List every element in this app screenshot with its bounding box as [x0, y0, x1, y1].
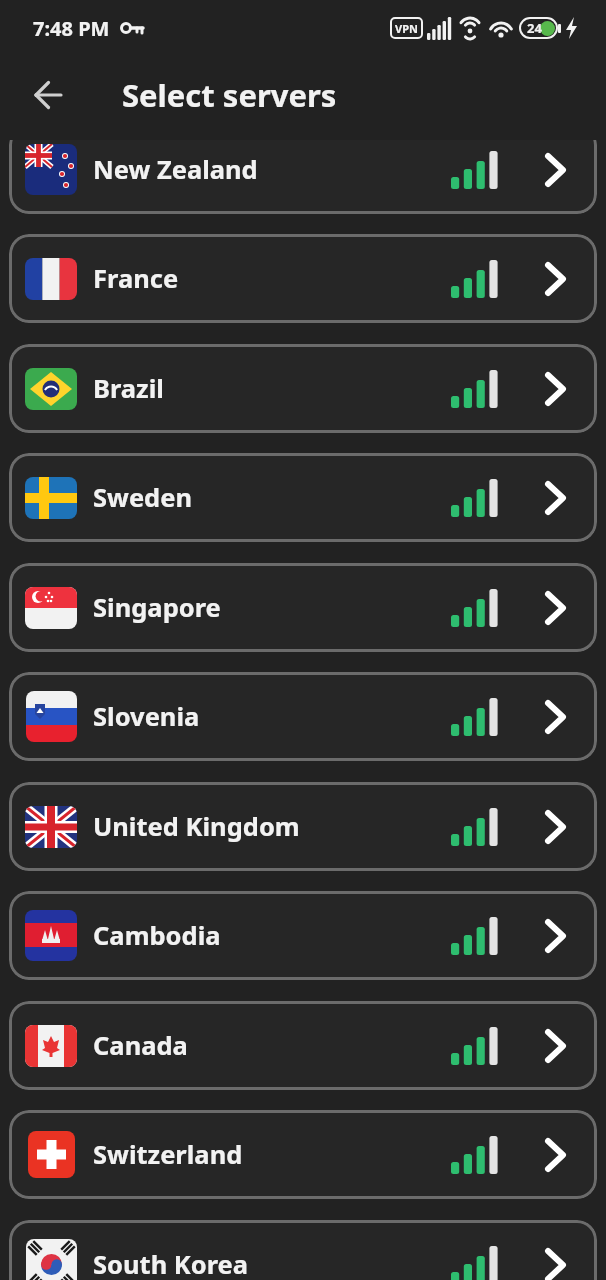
button[interactable]: Switzerland: [9, 1110, 597, 1199]
staticText: Switzerland: [93, 1137, 243, 1172]
button[interactable]: United Kingdom: [9, 782, 597, 871]
staticText: United Kingdom: [93, 809, 300, 844]
staticText: France: [93, 261, 179, 296]
staticText: Brazil: [93, 371, 164, 406]
staticText: 24: [527, 19, 542, 37]
staticText: Singapore: [93, 590, 221, 625]
button[interactable]: France: [9, 234, 597, 323]
button[interactable]: [24, 71, 72, 119]
staticText: Sweden: [93, 480, 193, 515]
staticText: VPN: [395, 21, 418, 36]
button[interactable]: Slovenia: [9, 672, 597, 761]
button[interactable]: South Korea: [9, 1220, 597, 1280]
staticText: 7:48 PM: [33, 15, 110, 42]
staticText: South Korea: [93, 1247, 249, 1280]
staticText: Slovenia: [93, 699, 200, 734]
button[interactable]: Brazil: [9, 344, 597, 433]
staticText: Cambodia: [93, 918, 221, 953]
staticText: Canada: [93, 1028, 188, 1063]
button[interactable]: New Zealand: [9, 140, 597, 214]
button[interactable]: Sweden: [9, 453, 597, 542]
button[interactable]: Canada: [9, 1001, 597, 1090]
button[interactable]: Singapore: [9, 563, 597, 652]
staticText: Select servers: [122, 74, 337, 116]
staticText: New Zealand: [93, 152, 258, 187]
button[interactable]: Cambodia: [9, 891, 597, 980]
